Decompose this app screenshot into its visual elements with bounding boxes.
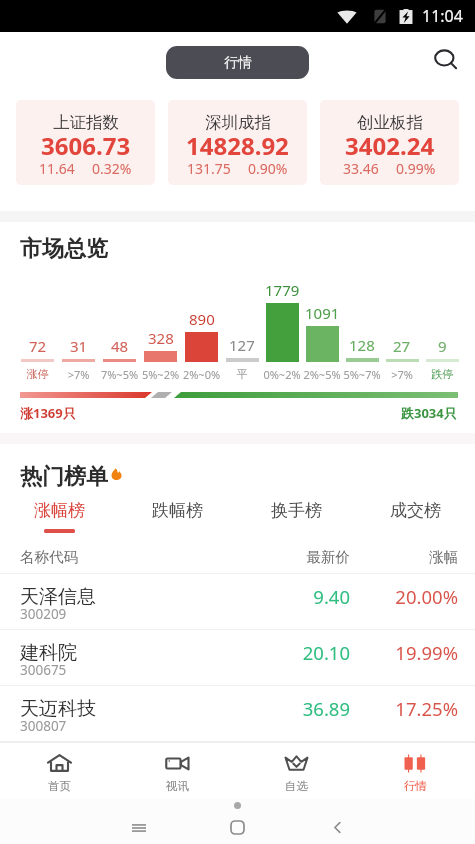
button[interactable]: 天迈科技 (0, 685, 475, 741)
staticText: 涨幅榜 (34, 500, 85, 521)
staticText: 300209 (20, 605, 67, 623)
staticText: 2%~0% (181, 367, 222, 382)
staticText: 5%~7% (342, 367, 382, 382)
staticText: 跌3034只 (401, 404, 457, 422)
button[interactable]: 视讯 (118, 743, 237, 799)
staticText: 建科院 (20, 641, 77, 665)
staticText: 72 (29, 336, 47, 356)
staticText: 涨1369只 (20, 404, 76, 422)
button[interactable]: 行情 (356, 743, 475, 799)
staticText: 0.90% (248, 159, 288, 178)
staticText: 48 (111, 336, 129, 356)
button[interactable]: 成交榜 (356, 500, 475, 533)
button[interactable]: 涨幅榜 (0, 500, 118, 533)
staticText: 0%~2% (262, 367, 302, 382)
staticText: 最新价 (238, 548, 350, 566)
staticText: 行情 (404, 779, 427, 793)
staticText: 33.46 (343, 159, 379, 178)
staticText: 1091 (305, 303, 340, 323)
staticText: 热门榜单 (20, 463, 108, 489)
staticText: 17.25% (350, 696, 458, 721)
button[interactable]: 跌幅榜 (118, 500, 237, 533)
staticText: 涨幅 (350, 548, 458, 566)
staticText: 市场总览 (20, 235, 108, 262)
staticText: 11:04 (422, 5, 463, 27)
staticText: 14828.92 (186, 129, 289, 162)
staticText: 首页 (48, 779, 71, 793)
staticText: 890 (189, 309, 215, 329)
staticText: 深圳成指 (205, 112, 271, 133)
button[interactable]: Search (429, 46, 463, 80)
staticText: 跌停 (422, 367, 462, 381)
staticText: 31 (70, 336, 88, 356)
staticText: 328 (148, 328, 174, 348)
button[interactable]: Home (220, 811, 254, 844)
staticText: 天泽信息 (20, 585, 96, 609)
staticText: 2%~5% (302, 367, 342, 382)
staticText: 天迈科技 (20, 697, 96, 721)
button[interactable]: 创业板指 (320, 100, 459, 185)
button[interactable]: 建科院 (0, 629, 475, 685)
button[interactable]: 行情 (166, 46, 309, 79)
staticText: 7%~5% (99, 367, 140, 382)
staticText: 0.99% (396, 159, 436, 178)
staticText: 9.40 (238, 584, 350, 609)
staticText: 行情 (224, 54, 252, 72)
staticText: 128 (349, 335, 375, 355)
staticText: 3402.24 (345, 129, 435, 162)
button[interactable]: 首页 (0, 743, 118, 799)
staticText: 36.89 (238, 696, 350, 721)
staticText: 视讯 (166, 779, 189, 793)
button[interactable]: 换手榜 (237, 500, 356, 533)
staticText: 19.99% (350, 640, 458, 665)
staticText: 11.64 (39, 159, 75, 178)
staticText: 涨停 (17, 367, 58, 381)
staticText: 平 (222, 367, 262, 381)
button[interactable]: Recent apps (122, 811, 156, 844)
staticText: 3606.73 (41, 129, 131, 162)
staticText: 名称代码 (20, 548, 78, 566)
staticText: 自选 (285, 779, 308, 793)
staticText: 1779 (265, 280, 300, 300)
staticText: 300807 (20, 717, 67, 735)
staticText: 27 (393, 336, 411, 356)
staticText: 20.10 (238, 640, 350, 665)
button[interactable]: 自选 (237, 743, 356, 799)
staticText: 9 (438, 336, 447, 356)
staticText: 创业板指 (357, 112, 423, 133)
staticText: 5%~2% (140, 367, 181, 382)
staticText: 20.00% (350, 584, 458, 609)
staticText: 127 (229, 335, 255, 355)
staticText: 300675 (20, 661, 67, 679)
staticText: 换手榜 (271, 500, 322, 521)
staticText: 成交榜 (390, 500, 441, 521)
button[interactable]: 天泽信息 (0, 573, 475, 629)
button[interactable]: 深圳成指 (168, 100, 307, 185)
button[interactable]: 上证指数 (16, 100, 155, 185)
staticText: 上证指数 (53, 112, 119, 133)
staticText: >7% (382, 367, 422, 382)
staticText: 131.75 (187, 159, 231, 178)
button[interactable]: Back (320, 811, 354, 844)
staticText: 跌幅榜 (152, 500, 203, 521)
staticText: 0.32% (92, 159, 132, 178)
staticText: >7% (58, 367, 99, 382)
